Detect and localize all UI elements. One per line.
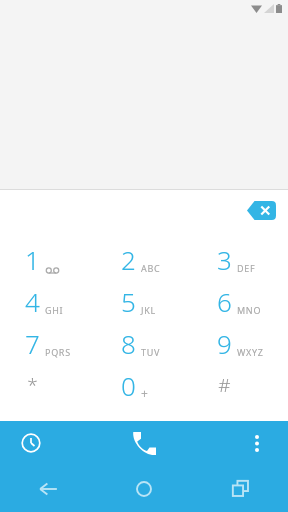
button[interactable]: 7 [0,322,96,364]
staticText: MNO [237,304,262,316]
staticText: DEF [237,262,256,274]
staticText: TUV [141,346,161,358]
staticText: WXYZ [237,346,264,358]
staticText: GHI [45,304,64,316]
button[interactable]: * [0,364,96,406]
staticText: + [141,385,149,400]
staticText: 4 [25,284,40,319]
button[interactable]: # [192,364,288,406]
staticText: PQRS [45,346,71,358]
button[interactable]: 1 [0,238,96,280]
button[interactable]: 3 [192,238,288,280]
button[interactable]: More options [226,421,288,465]
button[interactable]: Back [0,465,96,512]
button[interactable]: Recent apps [192,465,288,512]
staticText: 7 [25,326,40,361]
staticText: ABC [141,262,161,274]
button[interactable]: Call [62,421,226,465]
staticText: 5 [121,284,136,319]
staticText: 6 [217,284,232,319]
button[interactable]: Call history [0,421,62,465]
button[interactable]: 2 [96,238,192,280]
staticText: 8 [121,326,136,361]
button[interactable]: 0 [96,364,192,406]
button[interactable]: 8 [96,322,192,364]
staticText: 3 [217,242,232,277]
button[interactable]: 6 [192,280,288,322]
button[interactable]: 5 [96,280,192,322]
staticText: * [27,372,38,398]
button[interactable]: Home [96,465,192,512]
staticText: 2 [121,242,136,277]
staticText: # [218,372,231,398]
button[interactable]: Backspace [245,198,277,222]
staticText: 9 [217,326,232,361]
button[interactable]: 9 [192,322,288,364]
staticText: 1 [25,242,40,277]
staticText: 0 [121,368,136,403]
staticText: JKL [141,304,156,316]
button[interactable]: 4 [0,280,96,322]
